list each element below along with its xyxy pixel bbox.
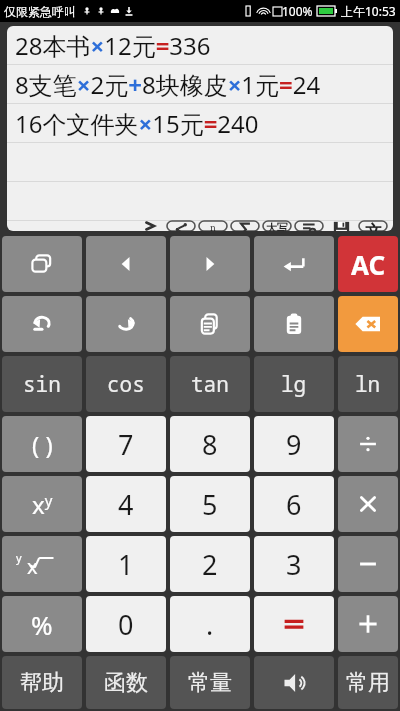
button[interactable]: Plus [338,596,398,652]
staticText: 常用 [346,669,390,697]
staticText: 大写 [266,221,288,231]
button[interactable]: 帮助 [2,656,82,709]
button[interactable]: 5 [170,476,250,532]
button[interactable]: 8 [170,416,250,472]
button[interactable]: Save [326,221,356,231]
staticText: % [31,607,53,642]
button[interactable]: xy [2,476,82,532]
button[interactable]: Search history [294,221,324,231]
button[interactable]: Minus [338,536,398,592]
button[interactable]: AC [338,236,398,292]
button[interactable]: 函数 [86,656,166,709]
staticText: y [16,550,22,565]
button[interactable]: Redo [86,296,166,352]
staticText: 7 [118,426,134,463]
button[interactable]: % [2,596,82,652]
staticText: 8 [202,426,218,463]
staticText: sin [23,370,61,399]
staticText: 8支笔×2元+8块橡皮×1元=24 [15,68,321,101]
button[interactable]: Move left [86,236,166,292]
staticText: AC [351,247,386,282]
staticText: . [206,606,214,643]
button[interactable]: Sum [230,221,260,231]
staticText: 2 [202,546,218,583]
staticText: xy [32,488,53,521]
staticText: 16个文件夹×15元=240 [15,107,259,140]
staticText: 常量 [188,669,232,697]
button[interactable]: Enter [254,236,334,292]
button[interactable]: 9 [254,416,334,472]
button[interactable]: Paste [254,296,334,352]
button[interactable]: 4 [86,476,166,532]
button[interactable]: Divide [338,416,398,472]
staticText: 9 [286,426,302,463]
staticText: 文 [365,221,382,231]
button[interactable]: Copy [170,296,250,352]
button[interactable]: Move right [170,236,250,292]
staticText: 28本书×12元=336 [15,29,211,62]
staticText: 函数 [104,669,148,697]
staticText: x [27,553,38,580]
button[interactable]: 0 [86,596,166,652]
staticText: cos [107,370,145,399]
button[interactable]: . [170,596,250,652]
staticText: n [210,221,216,231]
staticText: 6 [286,486,302,523]
staticText: ln [355,370,381,399]
button[interactable]: Backspace [338,296,398,352]
button[interactable]: Sound [254,656,334,709]
button[interactable]: 常量 [170,656,250,709]
button[interactable]: Window [2,236,82,292]
staticText: 0 [118,606,134,643]
staticText: 上午10:53 [341,3,396,19]
staticText: tan [191,370,229,399]
button[interactable]: Fraction [198,221,228,231]
staticText: 100% [282,3,313,19]
staticText: 1 [118,546,134,583]
staticText: 仅限紧急呼叫 [4,4,76,19]
button[interactable]: 常用 [338,656,398,709]
button[interactable]: 6 [254,476,334,532]
button[interactable]: Uppercase [262,221,292,231]
staticText: 帮助 [20,669,64,697]
button[interactable]: 2 [170,536,250,592]
button[interactable]: Multiply [338,476,398,532]
button[interactable]: sin [2,356,82,412]
staticText: lg [281,370,307,399]
button[interactable]: Share [166,221,196,231]
button[interactable]: Text mode [358,221,388,231]
button[interactable]: 7 [86,416,166,472]
button[interactable]: 1 [86,536,166,592]
staticText: 4 [118,486,134,523]
button[interactable]: Equals [254,596,334,652]
button[interactable]: Nth root [2,536,82,592]
staticText: 3 [286,546,302,583]
button[interactable]: cos [86,356,166,412]
button[interactable]: 3 [254,536,334,592]
button[interactable]: ln [338,356,398,412]
button[interactable]: ( ) [2,416,82,472]
staticText: 5 [202,486,218,523]
button[interactable]: lg [254,356,334,412]
button[interactable]: Undo [2,296,82,352]
button[interactable]: tan [170,356,250,412]
button[interactable]: Expand [135,221,165,231]
staticText: ( ) [32,428,53,461]
